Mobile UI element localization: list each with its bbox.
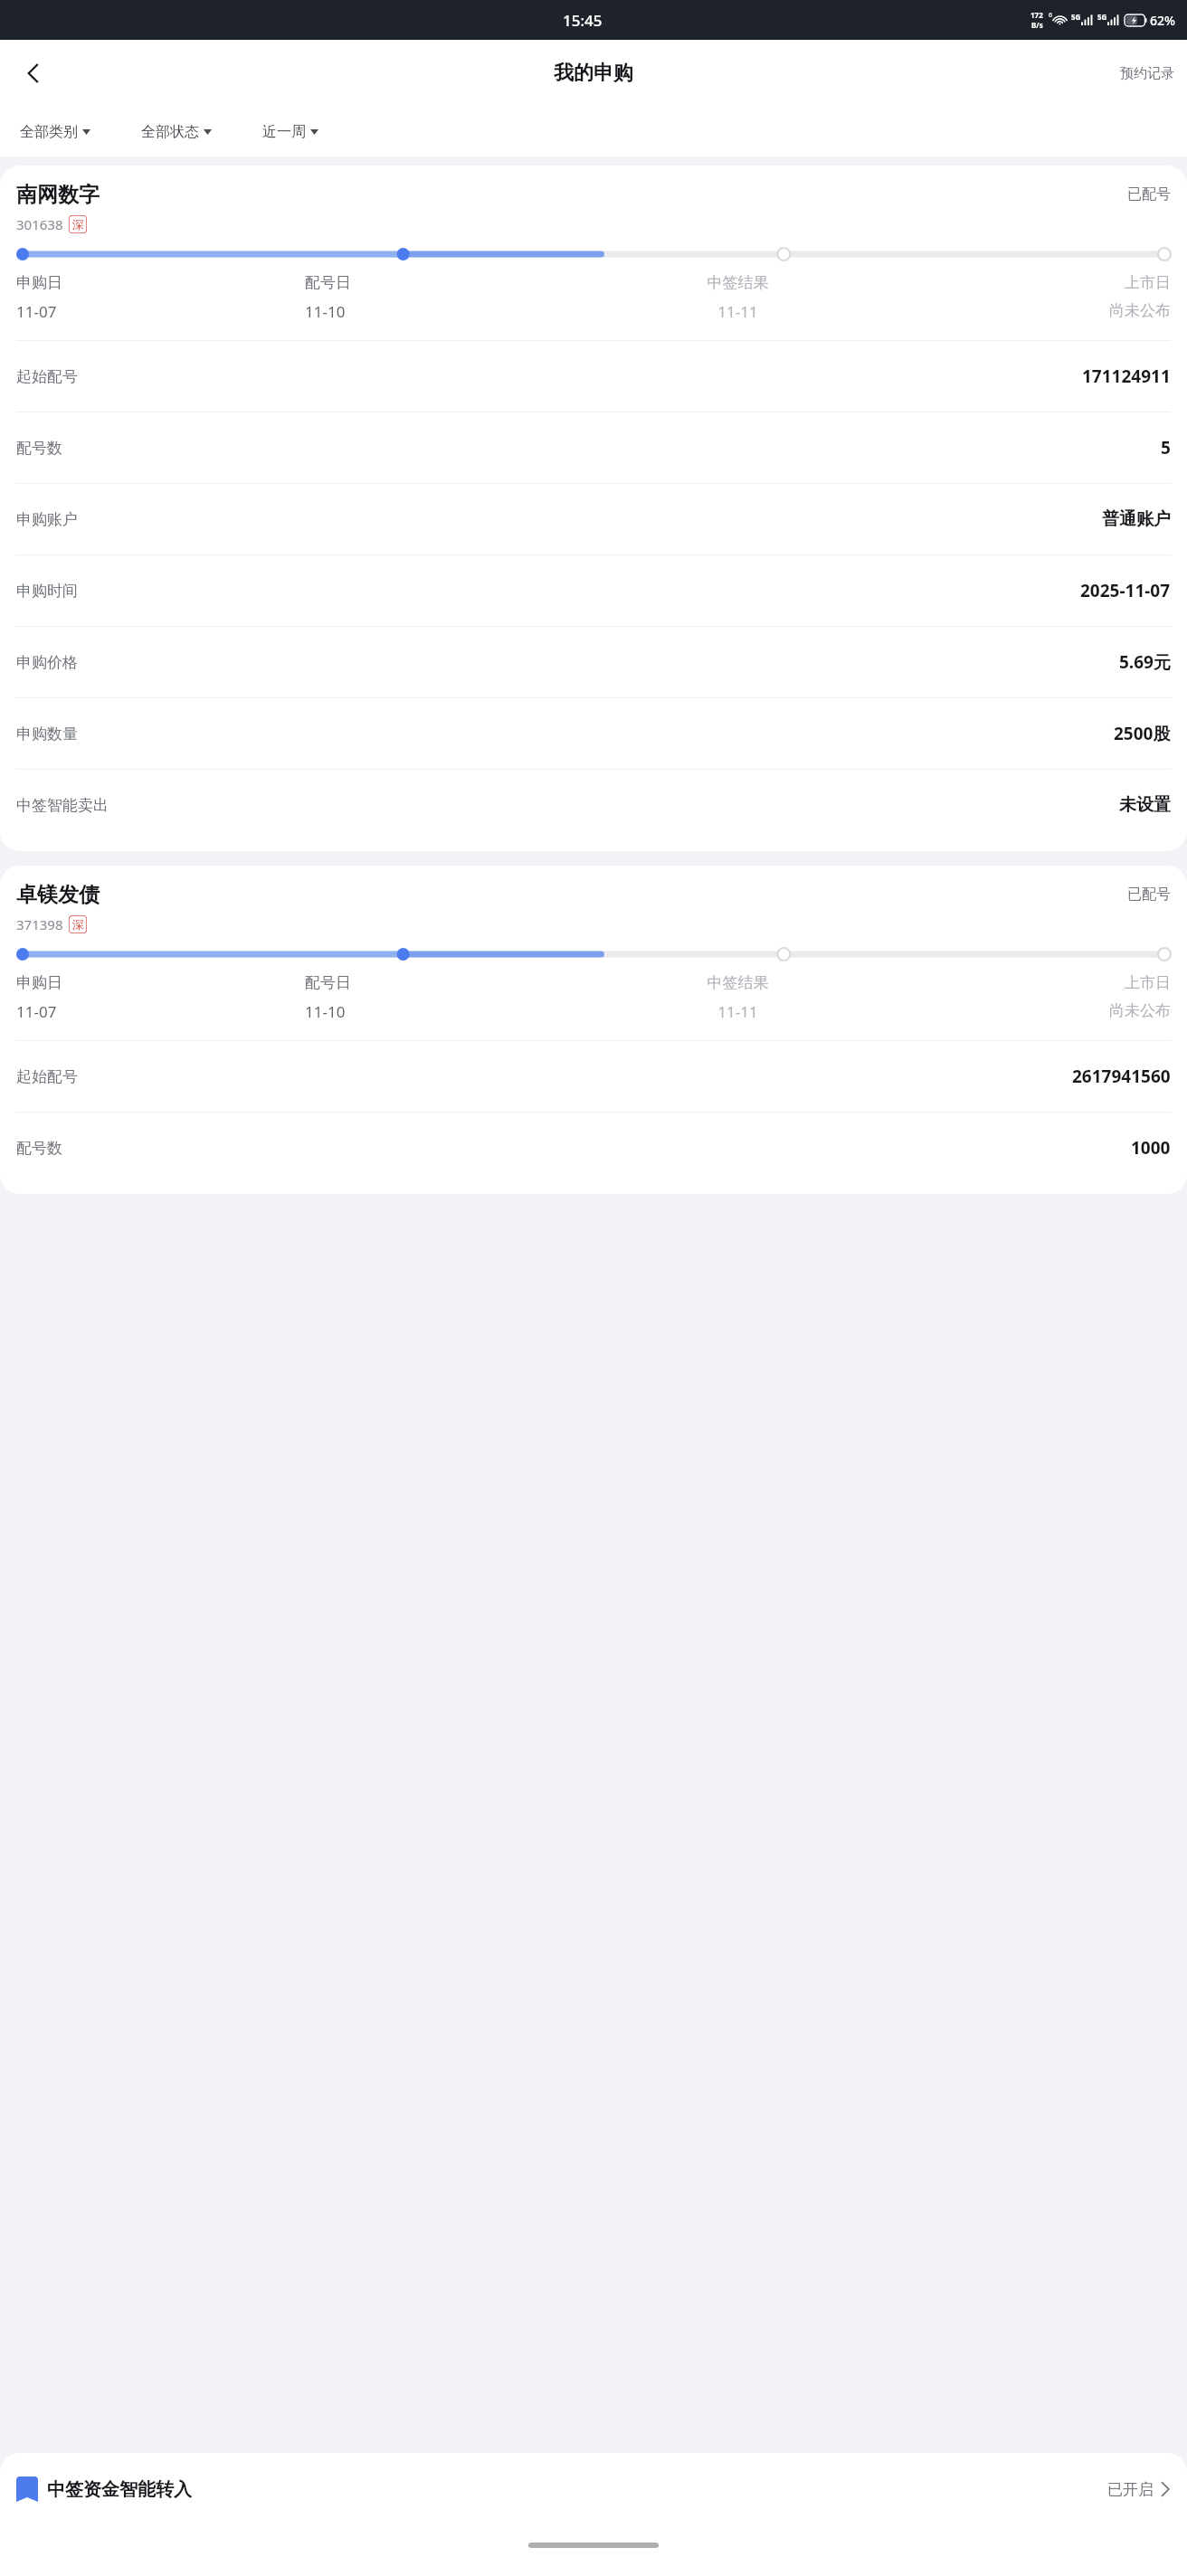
staticText: 配号数 <box>16 1139 62 1158</box>
staticText: 全部类别 <box>20 123 78 141</box>
button[interactable]: 起始配号 <box>16 341 1171 412</box>
staticText: 尚未公布 <box>882 301 1171 320</box>
staticText: 172 <box>1030 10 1043 20</box>
button[interactable]: 配号数 <box>16 1113 1171 1183</box>
button[interactable]: 申购价格 <box>16 627 1171 697</box>
staticText: 1000 <box>1131 1136 1171 1160</box>
staticText: 5G <box>1071 12 1081 22</box>
staticText: 11-10 <box>305 301 593 322</box>
staticText: 全部状态 <box>141 123 199 141</box>
staticText: 中签资金智能转入 <box>47 2478 192 2501</box>
staticText: 11-07 <box>16 301 305 322</box>
staticText: 171124911 <box>1082 365 1171 388</box>
staticText: 申购日 <box>16 973 305 992</box>
staticText: 上市日 <box>882 273 1171 292</box>
button[interactable]: 预约记录 <box>1107 54 1187 93</box>
staticText: 卓镁发债 <box>16 882 100 908</box>
staticText: 预约记录 <box>1120 65 1174 82</box>
button[interactable]: 南网数字 <box>0 166 1187 851</box>
staticText: 已开启 <box>1107 2480 1154 2499</box>
staticText: 起始配号 <box>16 367 78 386</box>
staticText: 已配号 <box>1127 885 1171 904</box>
staticText: 2025-11-07 <box>1080 579 1171 602</box>
button[interactable]: 全部状态 <box>138 118 215 147</box>
button[interactable]: 卓镁发债 <box>0 866 1187 1194</box>
staticText: 11-11 <box>593 301 882 322</box>
staticText: 申购数量 <box>16 724 78 743</box>
button[interactable]: Back <box>9 49 58 98</box>
staticText: 15:45 <box>563 10 603 31</box>
staticText: 配号数 <box>16 439 62 458</box>
staticText: B/s <box>1031 20 1043 30</box>
staticText: 深 <box>72 917 84 932</box>
staticText: 2617941560 <box>1072 1065 1171 1088</box>
staticText: 5G <box>1097 12 1107 22</box>
staticText: 中签结果 <box>593 973 882 992</box>
staticText: 近一周 <box>262 123 306 141</box>
staticText: 371398 <box>16 915 63 933</box>
staticText: 中签智能卖出 <box>16 796 109 815</box>
staticText: 11-10 <box>305 1001 593 1022</box>
button[interactable]: 中签资金智能转入 <box>0 2453 1187 2525</box>
staticText: 未设置 <box>1119 794 1171 816</box>
button[interactable]: 申购数量 <box>16 698 1171 769</box>
staticText: 5.69元 <box>1119 650 1171 674</box>
staticText: 5 <box>1161 436 1171 459</box>
staticText: 中签结果 <box>593 273 882 292</box>
staticText: 301638 <box>16 215 63 233</box>
staticText: 尚未公布 <box>882 1001 1171 1020</box>
staticText: 南网数字 <box>16 182 100 208</box>
staticText: 配号日 <box>305 973 593 992</box>
staticText: 2500股 <box>1114 722 1171 745</box>
staticText: 申购账户 <box>16 510 78 529</box>
button[interactable]: 申购时间 <box>16 555 1171 626</box>
staticText: 深 <box>72 217 84 232</box>
button[interactable]: 全部类别 <box>16 118 94 147</box>
staticText: 我的申购 <box>554 61 633 86</box>
staticText: 11-11 <box>593 1001 882 1022</box>
button[interactable]: 起始配号 <box>16 1041 1171 1112</box>
button[interactable]: 配号数 <box>16 412 1171 483</box>
staticText: 上市日 <box>882 973 1171 992</box>
staticText: 6 <box>1049 11 1053 20</box>
staticText: 62% <box>1150 12 1175 29</box>
staticText: 已配号 <box>1127 185 1171 204</box>
button[interactable]: 申购账户 <box>16 484 1171 554</box>
staticText: 普通账户 <box>1102 508 1171 530</box>
staticText: 申购价格 <box>16 653 78 672</box>
staticText: 申购日 <box>16 273 305 292</box>
button[interactable]: 近一周 <box>259 118 322 147</box>
button[interactable]: 中签智能卖出 <box>16 770 1171 840</box>
staticText: 11-07 <box>16 1001 305 1022</box>
staticText: 起始配号 <box>16 1067 78 1086</box>
staticText: 申购时间 <box>16 582 78 601</box>
staticText: 配号日 <box>305 273 593 292</box>
